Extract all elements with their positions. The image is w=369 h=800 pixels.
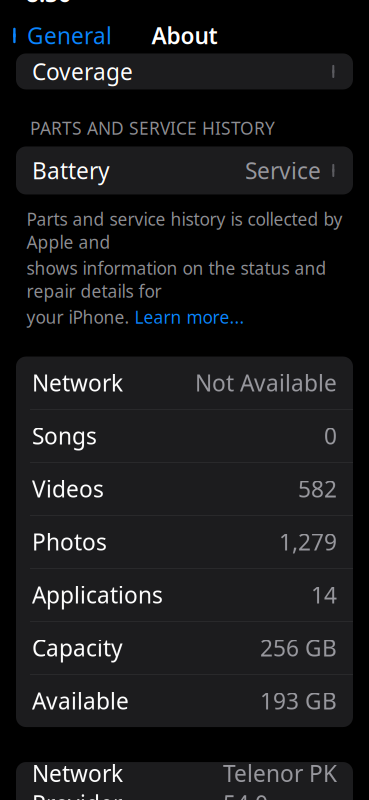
staticText: shows information on the status and repa… (26, 256, 326, 302)
button[interactable]: Battery (16, 146, 353, 194)
staticText: 14 (311, 580, 337, 610)
staticText: Capacity (32, 633, 123, 663)
button[interactable]: Coverage (16, 53, 353, 89)
staticText: Available (32, 686, 129, 716)
staticText: Network Provider (32, 758, 123, 800)
staticText: PARTS AND SERVICE HISTORY (30, 116, 275, 139)
staticText: Applications (32, 580, 163, 610)
staticText: Videos (32, 474, 104, 504)
staticText: Learn more... (134, 305, 244, 328)
staticText: Battery (32, 155, 110, 185)
button[interactable]: General (0, 14, 112, 56)
staticText: General (27, 20, 112, 50)
staticText: Parts and service history is collected b… (26, 207, 342, 253)
staticText: Service (245, 155, 321, 185)
staticText: 8:36 (26, 0, 71, 8)
staticText: Telenor PK 54.0 (223, 758, 337, 800)
staticText: 256 GB (260, 633, 337, 663)
staticText: Songs (32, 421, 97, 451)
staticText: Coverage (32, 56, 133, 86)
staticText: About (151, 20, 217, 50)
staticText: 1,279 (279, 527, 337, 557)
staticText: 582 (298, 474, 337, 504)
button[interactable]: Learn more... (134, 305, 244, 328)
staticText: Photos (32, 527, 107, 557)
staticText: your iPhone. (26, 305, 134, 328)
staticText: 193 GB (260, 686, 337, 716)
staticText: Network (32, 368, 123, 398)
staticText: Not Available (195, 368, 337, 398)
staticText: 0 (324, 421, 337, 451)
